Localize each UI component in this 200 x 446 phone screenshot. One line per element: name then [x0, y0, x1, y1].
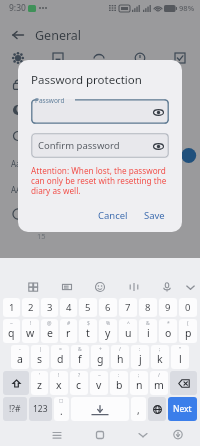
button[interactable]: Clipboard — [24, 278, 42, 296]
staticText: w — [26, 326, 35, 340]
staticText: Aa — [11, 158, 21, 169]
button[interactable]: Keyboard layout — [58, 278, 76, 296]
button[interactable]: 7 — [119, 298, 137, 317]
button[interactable]: Period — [54, 397, 69, 421]
staticText: . — [60, 404, 63, 418]
button[interactable]: @ — [41, 319, 58, 343]
staticText: u — [125, 326, 132, 340]
button[interactable]: ' — [31, 371, 48, 395]
button[interactable]: Back — [134, 426, 152, 444]
button[interactable]: 5 — [79, 298, 97, 317]
button[interactable]: | — [31, 345, 49, 369]
staticText: □ — [59, 398, 64, 403]
button[interactable]: Save — [140, 206, 169, 225]
button[interactable]: ! — [22, 319, 39, 343]
staticText: ; — [159, 346, 161, 353]
staticText: Save — [144, 209, 165, 222]
button[interactable]: 123 — [29, 397, 52, 421]
staticText: 123 — [33, 403, 48, 415]
button[interactable]: Text editing — [125, 278, 143, 296]
button[interactable]: 4 — [60, 298, 77, 317]
button[interactable]: * — [159, 319, 177, 343]
staticText: 0 — [185, 301, 191, 314]
button[interactable]: % — [99, 319, 117, 343]
button[interactable]: Show password — [151, 139, 165, 153]
staticText: p — [185, 326, 192, 340]
button[interactable] — [31, 99, 169, 124]
button[interactable]: Next — [168, 397, 197, 421]
staticText: ; — [138, 372, 140, 379]
staticText: h — [117, 352, 124, 366]
button[interactable]: 6 — [99, 298, 117, 317]
button[interactable]: = — [51, 345, 69, 369]
button[interactable]: 0 — [179, 298, 197, 317]
staticText: / — [158, 372, 160, 379]
button[interactable]: $ — [79, 319, 97, 343]
button[interactable]: ? — [70, 371, 88, 395]
staticText: k — [157, 352, 163, 366]
button[interactable]: / — [150, 371, 168, 395]
staticText: f — [78, 352, 82, 366]
staticText: ' — [39, 372, 41, 379]
button[interactable]: : — [131, 345, 149, 369]
button[interactable]: : — [110, 371, 128, 395]
button[interactable]: Voice input — [158, 278, 176, 296]
button[interactable]: Backspace — [170, 371, 197, 395]
button[interactable]: Comma — [131, 397, 146, 421]
button[interactable]: Confirm password — [31, 133, 169, 158]
button[interactable]: Change language — [148, 397, 166, 421]
staticText: $ — [87, 320, 90, 327]
button[interactable]: Recents — [48, 426, 66, 444]
button[interactable]: ^ — [119, 319, 137, 343]
staticText: 5 — [85, 301, 91, 314]
staticText: " — [179, 346, 182, 353]
staticText: Next — [173, 403, 192, 415]
button[interactable]: ~ — [3, 319, 20, 343]
staticText: / — [119, 346, 121, 353]
button[interactable]: 3 — [41, 298, 58, 317]
staticText: m — [154, 378, 164, 392]
staticText: r — [66, 326, 71, 340]
staticText: 3 — [47, 301, 53, 314]
staticText: 9 — [165, 301, 171, 314]
button[interactable]: Emoji — [91, 278, 109, 296]
button[interactable]: Shift — [3, 371, 29, 395]
button[interactable]: Home — [91, 426, 109, 444]
button[interactable]: 9 — [159, 298, 177, 317]
staticText: q — [8, 326, 15, 340]
button[interactable]: Space — [71, 397, 129, 421]
staticText: # — [67, 320, 71, 327]
staticText: d — [57, 352, 64, 366]
staticText: Password protection — [31, 72, 142, 88]
button[interactable]: 1 — [3, 298, 20, 317]
staticText: AA — [11, 184, 22, 195]
button[interactable]: & — [139, 319, 157, 343]
staticText: % — [106, 320, 111, 327]
button[interactable]: # — [60, 319, 77, 343]
button[interactable]: - — [11, 345, 29, 369]
button[interactable]: Back — [8, 25, 28, 45]
button[interactable]: & — [71, 345, 89, 369]
button[interactable]: + — [91, 345, 109, 369]
button[interactable]: Cancel — [94, 206, 132, 225]
staticText: , — [137, 403, 140, 417]
staticText: 8 — [145, 301, 151, 314]
staticText: = — [59, 346, 62, 353]
button[interactable]: ( — [179, 319, 197, 343]
staticText: i — [147, 326, 150, 340]
button[interactable]: Download — [169, 426, 187, 444]
button[interactable]: Hide keyboard — [182, 279, 198, 295]
staticText: & — [78, 346, 82, 353]
button[interactable]: !?# — [3, 397, 27, 421]
button[interactable]: ! — [50, 371, 68, 395]
staticText: - — [19, 346, 21, 353]
button[interactable]: 2 — [22, 298, 39, 317]
button[interactable]: " — [171, 345, 189, 369]
button[interactable]: Show password — [151, 105, 165, 119]
button[interactable]: / — [111, 345, 129, 369]
button[interactable]: 8 — [139, 298, 157, 317]
button[interactable]: ; — [151, 345, 169, 369]
button[interactable]: ; — [130, 371, 148, 395]
button[interactable]: ~ — [90, 371, 108, 395]
staticText: j — [139, 352, 142, 366]
